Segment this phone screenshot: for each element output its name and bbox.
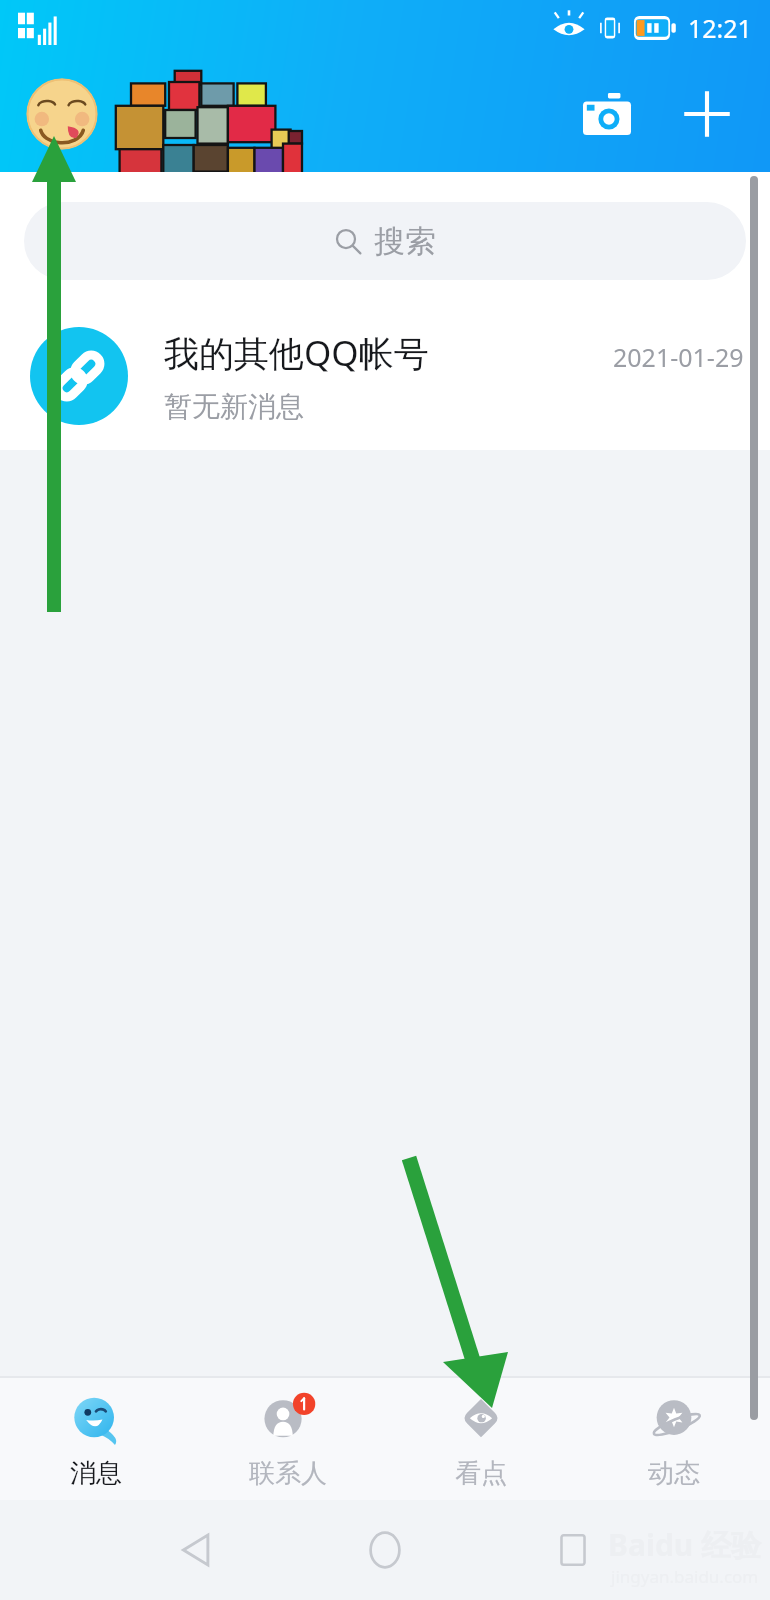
- button[interactable]: 联系人: [192, 1378, 384, 1500]
- button[interactable]: 消息: [0, 1378, 192, 1500]
- button[interactable]: Profile: [26, 78, 98, 150]
- staticText: 看点: [455, 1457, 507, 1490]
- staticText: 我的其他QQ帐号: [164, 329, 429, 377]
- button[interactable]: 我的其他QQ帐号: [0, 302, 770, 450]
- staticText: 2021-01-29: [613, 340, 744, 374]
- button[interactable]: Add: [670, 77, 744, 151]
- staticText: 搜索: [374, 222, 436, 261]
- button[interactable]: 看点: [384, 1378, 577, 1500]
- button[interactable]: 搜索: [24, 202, 746, 280]
- button[interactable]: 动态: [577, 1378, 770, 1500]
- button[interactable]: Home: [345, 1510, 425, 1590]
- staticText: 12:21: [688, 11, 752, 45]
- staticText: 暂无新消息: [164, 389, 304, 424]
- button[interactable]: Recents: [533, 1510, 613, 1590]
- button[interactable]: Camera: [570, 77, 644, 151]
- staticText: 联系人: [249, 1457, 327, 1490]
- staticText: 消息: [70, 1457, 122, 1490]
- staticText: 动态: [648, 1457, 700, 1490]
- button[interactable]: Back: [157, 1510, 237, 1590]
